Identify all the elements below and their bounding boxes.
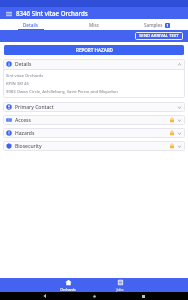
button[interactable]: Biosecurity bbox=[3, 141, 185, 151]
button[interactable]: Home bbox=[90, 292, 98, 300]
staticText: Sint vitae Orchards bbox=[6, 73, 44, 79]
button[interactable]: Access bbox=[3, 115, 185, 125]
other: Warning bbox=[169, 117, 175, 123]
staticText: Access bbox=[15, 117, 31, 124]
staticText: 9083 Owen Circle, Achilleburg, Saint Pie… bbox=[6, 89, 118, 95]
other: Warning bbox=[169, 130, 175, 136]
staticText: Misc bbox=[89, 22, 99, 28]
button[interactable]: Hazards bbox=[3, 128, 185, 138]
button[interactable]: Samples bbox=[125, 19, 188, 30]
staticText: Details bbox=[23, 22, 39, 28]
button[interactable]: Back bbox=[41, 292, 49, 300]
staticText: Primary Contact bbox=[15, 104, 54, 111]
other: Warning bbox=[169, 143, 175, 149]
staticText: KPIN 38146 bbox=[6, 81, 29, 87]
button[interactable]: Primary Contact bbox=[3, 102, 185, 112]
button[interactable]: Details bbox=[3, 59, 185, 69]
staticText: Hazards bbox=[15, 130, 35, 137]
staticText: 1 bbox=[166, 23, 169, 28]
staticText: 8346 Sint vitae Orchards bbox=[16, 9, 88, 17]
staticText: Orchards bbox=[60, 287, 76, 292]
button[interactable]: SEND ARRIVAL TEXT bbox=[135, 32, 183, 40]
button[interactable]: REPORT HAZARD bbox=[4, 45, 184, 55]
button[interactable]: Misc bbox=[62, 19, 125, 30]
button[interactable]: Orchards bbox=[53, 278, 83, 292]
staticText: REPORT HAZARD bbox=[76, 47, 113, 53]
staticText: Details bbox=[15, 61, 32, 68]
button[interactable]: Jobs bbox=[105, 278, 135, 292]
staticText: Samples bbox=[144, 22, 163, 28]
staticText: Jobs bbox=[116, 287, 124, 292]
button[interactable]: Open navigation menu bbox=[4, 9, 13, 18]
staticText: SEND ARRIVAL TEXT bbox=[139, 33, 179, 39]
button[interactable]: Recent apps bbox=[139, 292, 147, 300]
button[interactable]: Details bbox=[0, 19, 62, 30]
staticText: Biosecurity bbox=[15, 143, 42, 150]
